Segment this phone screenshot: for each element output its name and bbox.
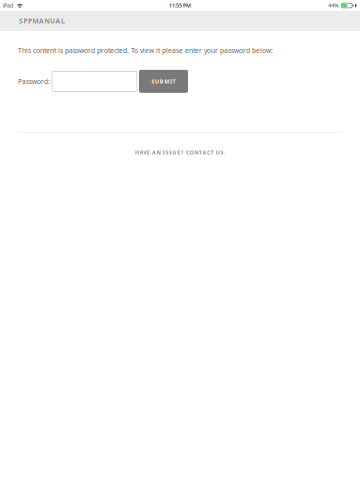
staticText: SUBMIT	[151, 78, 175, 85]
button[interactable]: SPPMANUAL	[18, 14, 66, 28]
staticText: This content is password protected. To v…	[18, 46, 273, 55]
staticText: iPad	[3, 2, 13, 9]
button[interactable]: Password	[52, 71, 137, 91]
button[interactable]: HAVE AN ISSUE? CONTACT US.	[133, 146, 227, 159]
staticText: 44%	[328, 2, 338, 9]
staticText: SPPMANUAL	[19, 17, 65, 25]
button[interactable]: SUBMIT	[139, 70, 188, 93]
staticText: HAVE AN ISSUE? CONTACT US.	[135, 149, 225, 156]
staticText: Password:	[18, 77, 50, 86]
staticText: 11:55 PM	[169, 2, 191, 9]
